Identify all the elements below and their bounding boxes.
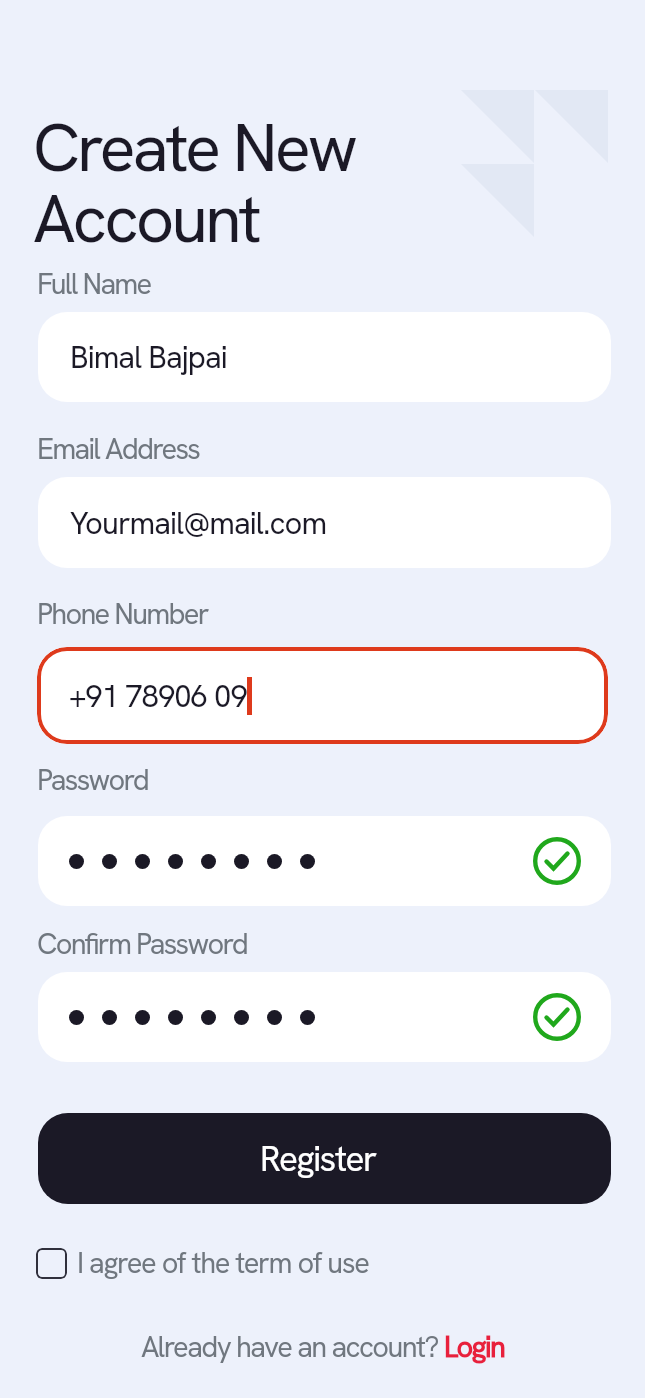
- staticText: Email Address: [37, 430, 200, 468]
- staticText: Login: [444, 1328, 505, 1366]
- staticText: Register: [260, 1136, 376, 1182]
- staticText: +91 78906 09: [69, 676, 247, 716]
- button[interactable]: Valid: [38, 972, 611, 1062]
- button[interactable]: Yourmail@mail.com: [38, 477, 611, 568]
- button[interactable]: Bimal Bajpai: [38, 312, 611, 402]
- staticText: Full Name: [37, 265, 151, 303]
- staticText: Password: [37, 761, 149, 799]
- staticText: Bimal Bajpai: [70, 337, 227, 377]
- staticText: Already have an account?: [141, 1328, 444, 1366]
- button[interactable]: Valid: [38, 816, 611, 906]
- staticText: Phone Number: [37, 595, 208, 633]
- button[interactable]: Register: [38, 1113, 611, 1204]
- other: Valid: [533, 837, 581, 885]
- staticText: Confirm Password: [37, 925, 247, 963]
- staticText: I agree of the term of use: [77, 1244, 369, 1282]
- other: Valid: [533, 993, 581, 1041]
- button[interactable]: Login: [444, 1328, 505, 1366]
- staticText: Create New Account: [33, 104, 355, 263]
- staticText: Yourmail@mail.com: [70, 503, 327, 543]
- button[interactable]: +91 78906 09: [37, 647, 608, 744]
- button[interactable]: I agree of the term of use: [36, 1244, 369, 1282]
